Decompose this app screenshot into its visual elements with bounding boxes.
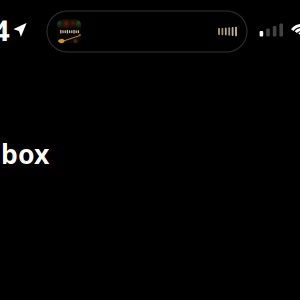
button[interactable]: Now Playing Live Activity — [47, 11, 247, 52]
button[interactable]: Inbox — [0, 136, 49, 171]
staticText: 4 — [0, 10, 10, 49]
staticText: Inbox — [0, 136, 49, 171]
